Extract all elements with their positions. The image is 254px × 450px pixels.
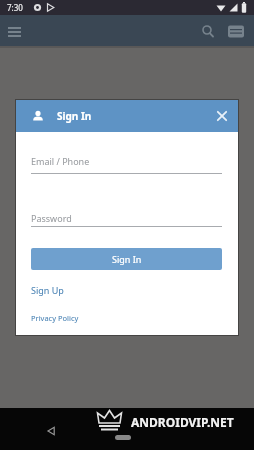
staticText: 7:30 xyxy=(7,2,23,13)
button[interactable] xyxy=(115,435,131,440)
staticText: Sign In xyxy=(57,109,92,123)
button[interactable]: Sign In xyxy=(31,248,222,270)
button[interactable]: Sign Up xyxy=(29,282,79,298)
staticText: Privacy Policy xyxy=(31,313,79,323)
button[interactable] xyxy=(43,424,59,438)
staticText: Email / Phone xyxy=(31,155,90,167)
button[interactable]: Privacy Policy xyxy=(29,311,89,325)
button[interactable] xyxy=(198,22,218,42)
button[interactable] xyxy=(226,22,248,42)
staticText: ANDROIDVIP.NET xyxy=(131,414,234,430)
button[interactable] xyxy=(210,100,238,132)
button[interactable] xyxy=(2,24,28,46)
staticText: Password xyxy=(31,212,72,224)
staticText: Sign In xyxy=(112,253,142,265)
staticText: Sign Up xyxy=(31,284,64,296)
